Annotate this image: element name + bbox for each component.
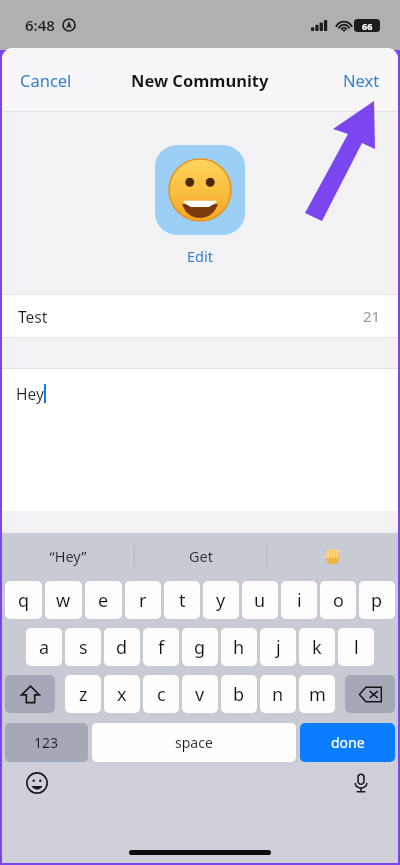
staticText: j: [276, 635, 281, 660]
button[interactable]: done: [300, 723, 395, 762]
button[interactable]: e: [85, 581, 122, 619]
button[interactable]: Get: [135, 533, 266, 579]
button[interactable]: v: [182, 675, 218, 713]
staticText: o: [333, 588, 344, 613]
button[interactable]: 123: [5, 723, 88, 762]
staticText: New Community: [131, 69, 269, 91]
staticText: 6:48: [25, 15, 55, 35]
button[interactable]: Shift: [5, 675, 55, 713]
button[interactable]: w: [45, 581, 82, 619]
button[interactable]: Cancel: [2, 59, 90, 101]
staticText: q: [18, 588, 30, 613]
button[interactable]: r: [125, 581, 161, 619]
button[interactable]: b: [221, 675, 257, 713]
staticText: space: [175, 733, 213, 752]
button[interactable]: t: [164, 581, 200, 619]
staticText: y: [216, 588, 226, 613]
button[interactable]: Backspace: [345, 675, 395, 713]
button[interactable]: Next: [325, 59, 398, 101]
staticText: “Hey”: [49, 546, 87, 566]
staticText: Get: [189, 546, 213, 566]
button[interactable]: x: [104, 675, 140, 713]
button[interactable]: g: [182, 628, 218, 666]
button[interactable]: Emoji keyboard: [22, 768, 52, 798]
staticText: z: [79, 682, 88, 707]
staticText: t: [179, 588, 186, 613]
staticText: v: [195, 682, 205, 707]
button[interactable]: i: [281, 581, 317, 619]
button[interactable]: Edit: [173, 243, 227, 269]
staticText: 66: [362, 20, 373, 32]
staticText: n: [272, 682, 284, 707]
button[interactable]: space: [92, 723, 296, 762]
button[interactable]: o: [320, 581, 356, 619]
staticText: b: [233, 682, 245, 707]
staticText: f: [158, 635, 165, 660]
staticText: a: [39, 635, 50, 660]
button[interactable]: a: [26, 628, 62, 666]
button[interactable]: u: [242, 581, 278, 619]
button[interactable]: q: [5, 581, 42, 619]
staticText: Hey: [16, 383, 44, 404]
staticText: 21: [363, 306, 381, 326]
button[interactable]: n: [260, 675, 296, 713]
button[interactable]: y: [203, 581, 239, 619]
button[interactable]: waving hand emoji: [267, 533, 398, 579]
staticText: r: [139, 588, 147, 613]
staticText: l: [354, 635, 359, 660]
button[interactable]: Test: [2, 294, 398, 338]
button[interactable]: c: [143, 675, 179, 713]
button[interactable]: z: [65, 675, 101, 713]
staticText: m: [309, 682, 326, 707]
staticText: s: [79, 635, 88, 660]
staticText: Cancel: [20, 69, 72, 91]
button[interactable]: Community photo: [155, 145, 245, 235]
button[interactable]: Hey: [2, 368, 398, 511]
button[interactable]: “Hey”: [2, 533, 134, 579]
staticText: i: [297, 588, 302, 613]
staticText: d: [116, 635, 128, 660]
button[interactable]: d: [104, 628, 140, 666]
button[interactable]: l: [338, 628, 374, 666]
staticText: u: [254, 588, 266, 613]
button[interactable]: p: [359, 581, 395, 619]
button[interactable]: s: [65, 628, 101, 666]
button[interactable]: h: [221, 628, 257, 666]
button[interactable]: k: [299, 628, 335, 666]
button[interactable]: Dictation: [346, 768, 376, 798]
staticText: c: [157, 682, 166, 707]
button[interactable]: f: [143, 628, 179, 666]
staticText: 123: [34, 733, 59, 752]
staticText: Test: [18, 306, 48, 327]
staticText: w: [56, 588, 71, 613]
staticText: h: [233, 635, 245, 660]
button[interactable]: m: [299, 675, 335, 713]
staticText: Edit: [187, 246, 213, 266]
staticText: Next: [343, 69, 380, 91]
staticText: x: [117, 682, 127, 707]
staticText: k: [312, 635, 322, 660]
staticText: done: [331, 733, 365, 752]
staticText: p: [371, 588, 383, 613]
button[interactable]: j: [260, 628, 296, 666]
staticText: g: [194, 635, 206, 660]
staticText: e: [98, 588, 109, 613]
